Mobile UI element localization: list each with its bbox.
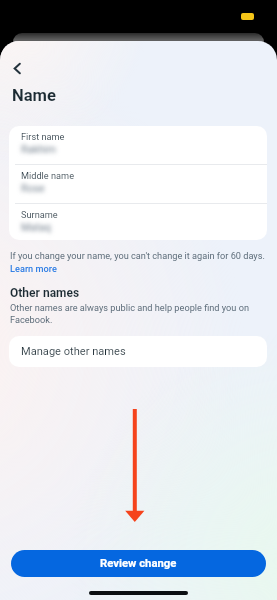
staticText: First name [21,131,65,142]
button[interactable]: Manage other names [9,336,267,367]
staticText: Name [12,86,56,105]
button[interactable]: Learn more [10,263,57,274]
staticText: Review change [100,557,177,570]
button[interactable]: Back [5,56,29,80]
staticText: Surname [21,209,58,220]
staticText: Learn more [10,263,57,274]
staticText: Rakhim [21,143,57,155]
staticText: Manage other names [21,345,126,358]
staticText: Rose [21,182,45,194]
staticText: Mataq [21,221,51,233]
button[interactable]: Review change [11,550,266,577]
staticText: Middle name [21,170,75,181]
staticText: Other names [10,286,80,300]
staticText: Other names are always public and help p… [10,302,260,325]
staticText: If you change your name, you can't chang… [10,250,265,261]
